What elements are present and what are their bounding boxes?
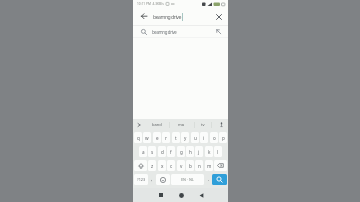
- button[interactable]: o: [210, 132, 218, 143]
- staticText: beamng drive: [152, 29, 177, 35]
- button[interactable]: [134, 160, 147, 171]
- staticText: a: [142, 149, 145, 155]
- staticText: u: [194, 135, 197, 141]
- button[interactable]: a: [139, 146, 147, 157]
- button[interactable]: ,: [148, 174, 156, 185]
- button[interactable]: m: [205, 160, 213, 171]
- button[interactable]: d: [158, 146, 166, 157]
- staticText: ?123: [137, 177, 146, 182]
- button[interactable]: s: [148, 146, 156, 157]
- staticText: y: [184, 135, 187, 141]
- button[interactable]: u: [191, 132, 199, 143]
- staticText: q: [137, 135, 140, 141]
- staticText: r: [165, 135, 167, 141]
- button[interactable]: [219, 122, 224, 127]
- staticText: f: [170, 149, 172, 155]
- button[interactable]: [137, 123, 141, 127]
- button[interactable]: f: [167, 146, 175, 157]
- button[interactable]: x: [158, 160, 166, 171]
- button[interactable]: l: [214, 146, 222, 157]
- button[interactable]: h: [186, 146, 194, 157]
- staticText: o: [213, 135, 216, 141]
- staticText: c: [170, 163, 173, 169]
- button[interactable]: .: [205, 174, 212, 185]
- button[interactable]: i: [200, 132, 208, 143]
- button[interactable]: [174, 188, 188, 202]
- button[interactable]: band: [145, 119, 169, 130]
- staticText: t: [175, 135, 177, 141]
- button[interactable]: [216, 29, 222, 35]
- button[interactable]: EN · NL: [171, 174, 204, 185]
- button[interactable]: beamng drive: [141, 26, 222, 37]
- button[interactable]: t: [172, 132, 180, 143]
- staticText: n: [198, 163, 201, 169]
- button[interactable]: [216, 14, 222, 20]
- staticText: 10:11 PM 4.3KB/s: [137, 2, 164, 6]
- button[interactable]: q: [134, 132, 142, 143]
- button[interactable]: j: [195, 146, 203, 157]
- button[interactable]: ma: [169, 119, 194, 130]
- staticText: g: [180, 149, 183, 155]
- staticText: tv: [201, 122, 205, 128]
- staticText: e: [156, 135, 159, 141]
- button[interactable]: n: [195, 160, 203, 171]
- staticText: b: [189, 163, 192, 169]
- staticText: x: [161, 163, 164, 169]
- button[interactable]: e: [153, 132, 161, 143]
- button[interactable]: c: [167, 160, 175, 171]
- button[interactable]: b: [186, 160, 194, 171]
- staticText: p: [222, 135, 225, 141]
- button[interactable]: [154, 188, 168, 202]
- staticText: l: [217, 149, 219, 155]
- button[interactable]: beamng drive: [141, 8, 222, 25]
- button[interactable]: w: [143, 132, 151, 143]
- staticText: k: [208, 149, 211, 155]
- button[interactable]: [214, 160, 227, 171]
- staticText: v: [180, 163, 183, 169]
- button[interactable]: [194, 188, 208, 202]
- button[interactable]: [156, 174, 170, 185]
- button[interactable]: r: [162, 132, 170, 143]
- button[interactable]: tv: [194, 119, 211, 130]
- button[interactable]: [141, 13, 148, 20]
- staticText: i: [203, 135, 205, 141]
- staticText: beamng drive: [153, 13, 181, 20]
- staticText: ma: [178, 122, 185, 128]
- button[interactable]: ?123: [134, 174, 148, 185]
- staticText: .: [208, 176, 210, 183]
- button[interactable]: g: [177, 146, 185, 157]
- staticText: band: [152, 122, 162, 128]
- staticText: EN · NL: [181, 177, 194, 182]
- staticText: ,: [151, 176, 153, 183]
- staticText: h: [189, 149, 192, 155]
- staticText: s: [151, 149, 154, 155]
- button[interactable]: k: [205, 146, 213, 157]
- button[interactable]: y: [181, 132, 189, 143]
- staticText: j: [198, 149, 200, 155]
- button[interactable]: v: [177, 160, 185, 171]
- staticText: d: [161, 149, 164, 155]
- staticText: w: [145, 135, 149, 141]
- button[interactable]: p: [219, 132, 227, 143]
- staticText: z: [151, 163, 154, 169]
- button[interactable]: [212, 174, 227, 185]
- staticText: m: [207, 163, 212, 169]
- button[interactable]: z: [148, 160, 156, 171]
